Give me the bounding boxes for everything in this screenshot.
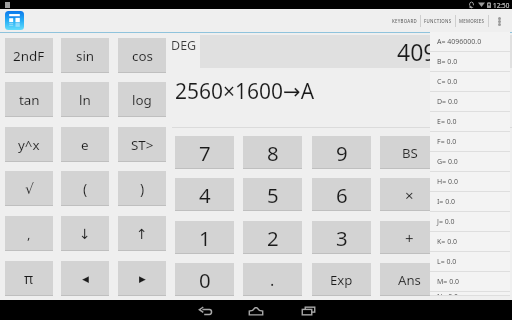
button[interactable]: 2ndF xyxy=(5,38,53,73)
staticText: ◀ xyxy=(82,274,89,284)
staticText: 9 xyxy=(336,139,348,167)
staticText: 7 xyxy=(199,139,211,167)
staticText: 5 xyxy=(267,181,279,209)
button[interactable]: Exp xyxy=(312,263,371,296)
button[interactable]: log xyxy=(118,82,166,117)
button[interactable]: A= 4096000.0 xyxy=(430,32,510,52)
button[interactable]: 6 xyxy=(312,178,371,211)
button[interactable]: FUNCTIONS xyxy=(424,9,452,33)
button[interactable]: BS xyxy=(380,136,439,169)
staticText: M= 0.0 xyxy=(437,277,460,287)
staticText: e xyxy=(81,136,89,154)
button[interactable]: D= 0.0 xyxy=(430,92,510,112)
staticText: ▶ xyxy=(139,274,146,284)
button[interactable]: 5 xyxy=(243,178,302,211)
staticText: G= 0.0 xyxy=(437,157,458,167)
staticText: 8 xyxy=(267,139,279,167)
staticText: ( xyxy=(83,179,88,198)
button[interactable]: e xyxy=(61,127,109,162)
button[interactable]: 1 xyxy=(175,221,234,254)
button[interactable]: , xyxy=(5,216,53,251)
staticText: 3 xyxy=(336,224,348,252)
button[interactable]: × xyxy=(380,178,439,211)
button[interactable]: H= 0.0 xyxy=(430,172,510,192)
button[interactable]: K= 0.0 xyxy=(430,232,510,252)
staticText: H= 0.0 xyxy=(437,177,458,187)
button[interactable]: ( xyxy=(61,171,109,206)
button[interactable]: ◀ xyxy=(61,261,109,296)
button[interactable]: . xyxy=(243,263,302,296)
staticText: I= 0.0 xyxy=(437,197,456,207)
button[interactable]: 8 xyxy=(243,136,302,169)
staticText: ) xyxy=(140,179,145,198)
staticText: √ xyxy=(25,181,34,197)
staticText: × xyxy=(405,185,414,205)
staticText: J= 0.0 xyxy=(437,217,455,227)
button[interactable]: ln xyxy=(61,82,109,117)
staticText: B= 0.0 xyxy=(437,57,458,67)
staticText: 1 xyxy=(199,224,211,252)
staticText: tan xyxy=(19,91,40,109)
staticText: KEYBOARD xyxy=(392,18,417,24)
button[interactable]: 2 xyxy=(243,221,302,254)
staticText: C= 0.0 xyxy=(437,77,458,87)
staticText: 4096000.0 xyxy=(397,36,509,67)
button[interactable]: J= 0.0 xyxy=(430,212,510,232)
button[interactable]: B= 0.0 xyxy=(430,52,510,72)
staticText: , xyxy=(27,225,31,243)
staticText: F= 0.0 xyxy=(437,137,457,147)
button[interactable]: C= 0.0 xyxy=(430,72,510,92)
button[interactable]: F= 0.0 xyxy=(430,132,510,152)
button[interactable]: MEMORIES xyxy=(459,9,485,33)
button[interactable]: tan xyxy=(5,82,53,117)
button[interactable]: M= 0.0 xyxy=(430,272,510,292)
staticText: 0 xyxy=(199,266,211,294)
button[interactable]: ▶ xyxy=(118,261,166,296)
button[interactable]: 0 xyxy=(175,263,234,296)
staticText: Exp xyxy=(330,271,353,289)
button[interactable]: cos xyxy=(118,38,166,73)
staticText: 2 xyxy=(267,224,279,252)
button[interactable]: 9 xyxy=(312,136,371,169)
button[interactable]: sin xyxy=(61,38,109,73)
button[interactable]: G= 0.0 xyxy=(430,152,510,172)
button[interactable]: L= 0.0 xyxy=(430,252,510,272)
staticText: E= 0.0 xyxy=(437,117,457,127)
button[interactable]: √ xyxy=(5,171,53,206)
staticText: ST> xyxy=(131,136,154,154)
button[interactable]: ) xyxy=(118,171,166,206)
staticText: sin xyxy=(76,47,95,65)
button[interactable]: π xyxy=(5,261,53,296)
staticText: ↑ xyxy=(136,226,148,242)
button[interactable]: I= 0.0 xyxy=(430,192,510,212)
button[interactable]: Recents xyxy=(298,302,318,320)
button[interactable]: ↑ xyxy=(118,216,166,251)
button[interactable]: KEYBOARD xyxy=(392,9,417,33)
staticText: π xyxy=(24,269,34,288)
staticText: 2560×1600→A xyxy=(175,77,315,106)
button[interactable]: 3 xyxy=(312,221,371,254)
staticText: D= 0.0 xyxy=(437,97,458,107)
staticText: 6 xyxy=(336,181,348,209)
staticText: DEG xyxy=(171,37,197,54)
button[interactable]: Back xyxy=(195,302,215,320)
staticText: cos xyxy=(132,47,153,65)
staticText: A= 4096000.0 xyxy=(437,37,482,47)
button[interactable]: More options xyxy=(489,9,512,33)
button[interactable]: + xyxy=(380,221,439,254)
staticText: L= 0.0 xyxy=(437,257,457,267)
button[interactable]: N= 0.0 xyxy=(430,292,510,296)
button[interactable]: E= 0.0 xyxy=(430,112,510,132)
button[interactable]: 4 xyxy=(175,178,234,211)
button[interactable]: 7 xyxy=(175,136,234,169)
staticText: 2ndF xyxy=(13,47,45,65)
button[interactable]: Ans xyxy=(380,263,439,296)
button[interactable]: ↓ xyxy=(61,216,109,251)
staticText: Ans xyxy=(398,271,421,289)
button[interactable]: y^x xyxy=(5,127,53,162)
staticText: FUNCTIONS xyxy=(424,18,452,24)
other: App icon xyxy=(5,11,24,30)
button[interactable]: Home xyxy=(246,302,266,320)
button[interactable]: ST> xyxy=(118,127,166,162)
staticText: 4 xyxy=(199,181,211,209)
